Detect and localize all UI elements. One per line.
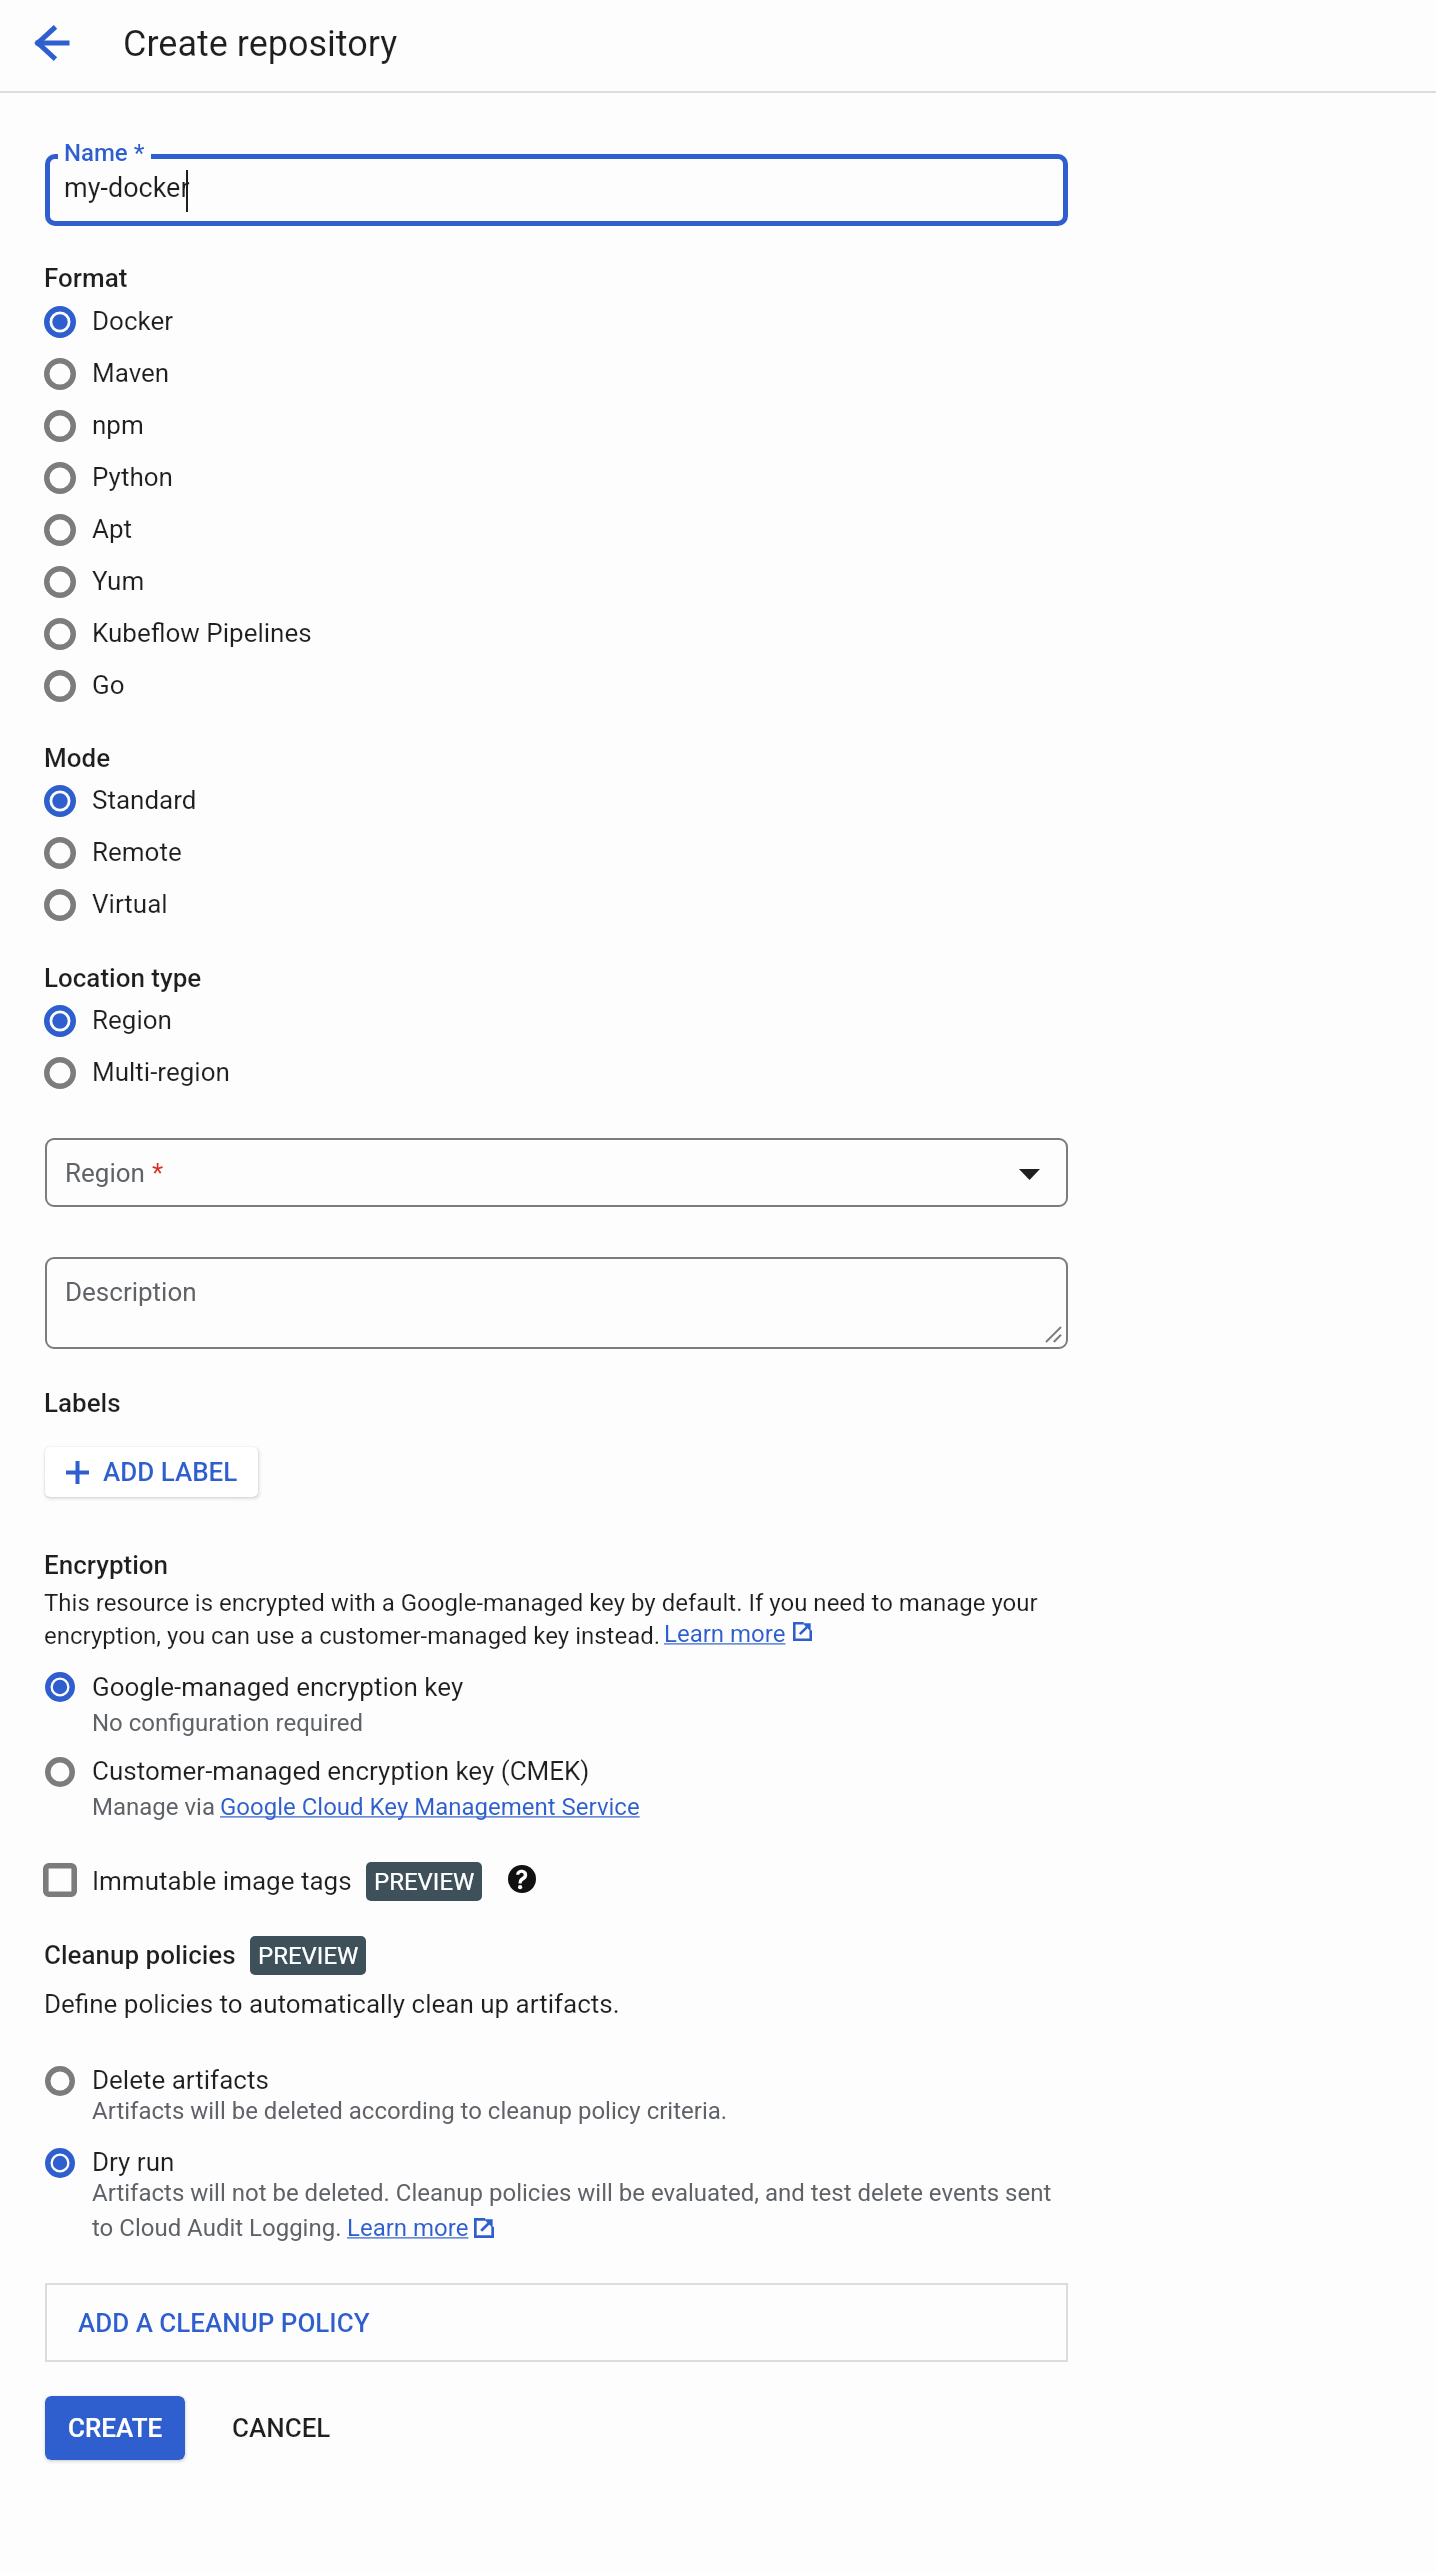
button[interactable]: Apt [0,504,1436,556]
staticText: This resource is encrypted with a Google… [44,1589,1038,1617]
staticText: Format [44,263,128,293]
button[interactable]: Maven [0,348,1436,400]
button[interactable]: Google-managed encryption key [0,1666,1436,1750]
button[interactable]: Learn more [347,2214,469,2242]
button[interactable]: Virtual [0,879,1436,931]
button[interactable]: Multi-region [0,1047,1436,1099]
staticText: Dry run [92,2147,175,2177]
button[interactable]: my-docker [45,154,1068,226]
button[interactable]: Remote [0,827,1436,879]
staticText: my-docker [64,172,190,204]
button[interactable]: Help [508,1865,536,1893]
button[interactable]: CANCEL [210,2396,353,2460]
staticText: Multi-region [92,1057,230,1087]
staticText: No configuration required [92,1709,364,1737]
staticText: npm [92,410,144,440]
button[interactable]: Standard [0,775,1436,827]
staticText: Maven [92,358,170,388]
staticText: Location type [44,963,202,993]
staticText: Description [65,1277,197,1307]
button[interactable] [0,1856,480,1904]
staticText: Customer-managed encryption key (CMEK) [92,1756,590,1786]
staticText: PREVIEW [258,1942,359,1970]
staticText: * [152,1158,164,1188]
staticText: CREATE [68,2413,163,2443]
staticText: PREVIEW [374,1868,475,1896]
staticText: Delete artifacts [92,2065,269,2095]
button[interactable]: Dry run [0,2141,1436,2251]
staticText: Manage via [92,1793,221,1821]
staticText: Define policies to automatically clean u… [44,1989,620,2019]
staticText: ADD LABEL [103,1457,238,1487]
staticText: Go [92,670,125,700]
staticText: Virtual [92,889,168,919]
staticText: Cleanup policies [44,1940,236,1970]
button[interactable]: ADD A CLEANUP POLICY [45,2283,1068,2362]
staticText: Labels [44,1388,121,1418]
staticText: Remote [92,837,182,867]
staticText: Standard [92,785,197,815]
button[interactable]: Customer-managed encryption key (CMEK) [0,1750,1436,1834]
staticText: Google-managed encryption key [92,1672,464,1702]
button[interactable]: CREATE [45,2396,185,2460]
staticText: Python [92,462,173,492]
staticText: Region [65,1158,152,1188]
staticText: Artifacts will be deleted according to c… [92,2097,728,2125]
button[interactable]: Delete artifacts [0,2059,1436,2139]
staticText: Name * [64,139,145,167]
button[interactable]: Description [45,1257,1068,1349]
button[interactable]: Kubeflow Pipelines [0,608,1436,660]
staticText: Yum [92,566,145,596]
button[interactable]: ADD LABEL [45,1447,258,1497]
button[interactable]: Python [0,452,1436,504]
staticText: Create repository [123,23,398,65]
button[interactable]: Region [0,995,1436,1047]
staticText: Mode [44,743,111,773]
staticText: to Cloud Audit Logging. [92,2214,348,2242]
button[interactable]: Yum [0,556,1436,608]
staticText: Learn more [347,2214,469,2242]
staticText: encryption, you can use a customer-manag… [44,1622,667,1650]
button[interactable]: Learn more [664,1620,786,1648]
staticText: Immutable image tags [92,1866,352,1896]
staticText: Kubeflow Pipelines [92,618,312,648]
staticText: Artifacts will not be deleted. Cleanup p… [92,2179,1052,2207]
button[interactable]: Google Cloud Key Management Service [220,1793,640,1821]
button[interactable]: Go [0,660,1436,712]
button[interactable]: Docker [0,296,1436,348]
button[interactable]: npm [0,400,1436,452]
button[interactable]: Region [45,1138,1068,1207]
staticText: Learn more [664,1620,786,1648]
staticText: Google Cloud Key Management Service [220,1793,640,1821]
staticText: CANCEL [232,2413,331,2443]
staticText: Docker [92,306,174,336]
button[interactable]: Back [21,12,83,74]
staticText: Apt [92,514,133,544]
staticText: Encryption [44,1550,169,1580]
staticText: Region [92,1005,172,1035]
staticText: ADD A CLEANUP POLICY [78,2308,370,2338]
